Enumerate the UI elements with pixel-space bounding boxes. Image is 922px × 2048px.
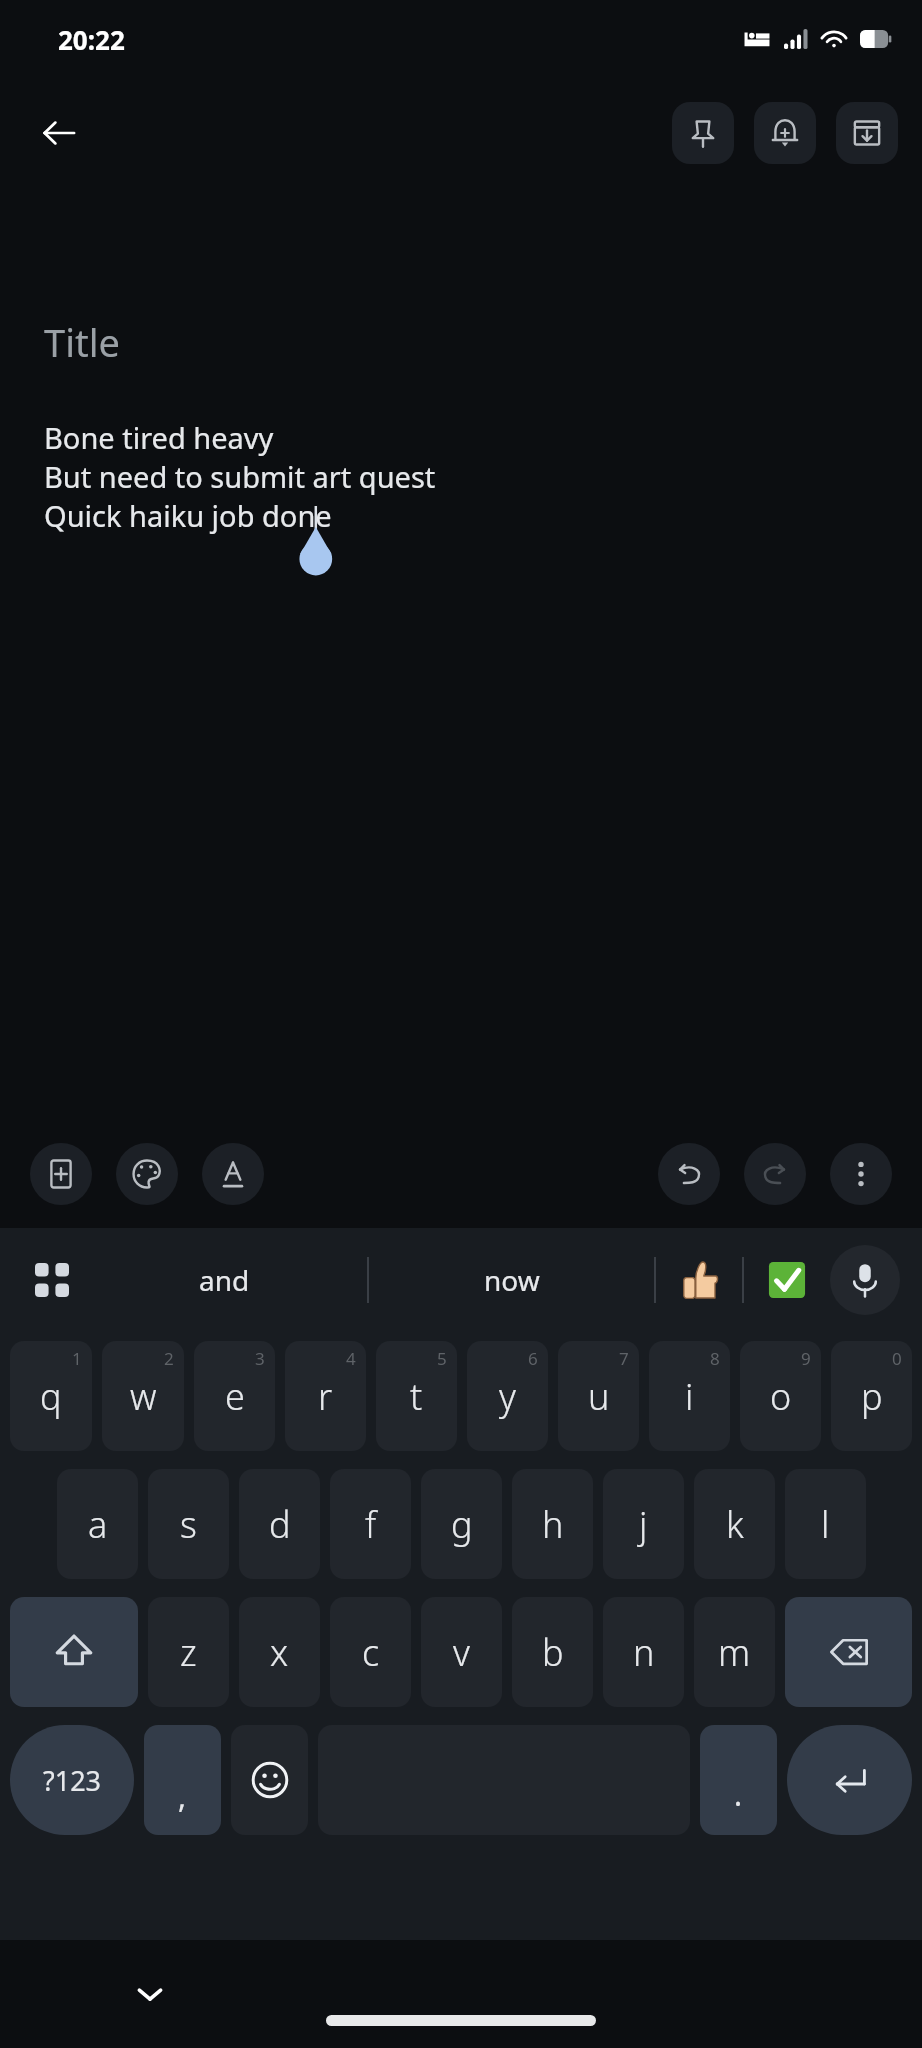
staticText: 3 xyxy=(255,1347,265,1370)
button[interactable]: l xyxy=(785,1469,866,1579)
button[interactable]: d xyxy=(239,1469,320,1579)
button[interactable]: Add xyxy=(30,1143,92,1205)
staticText: f xyxy=(365,1500,377,1549)
button[interactable]: u xyxy=(558,1341,639,1451)
button[interactable]: More options xyxy=(830,1143,892,1205)
staticText: But need to submit art quest xyxy=(44,457,436,496)
button[interactable]: Title xyxy=(44,316,878,368)
staticText: l xyxy=(821,1500,830,1549)
button[interactable]: t xyxy=(376,1341,457,1451)
button[interactable]: Archive xyxy=(836,102,898,164)
button[interactable]: , xyxy=(144,1725,221,1835)
staticText: g xyxy=(451,1500,473,1549)
button[interactable]: f xyxy=(330,1469,411,1579)
staticText: 0 xyxy=(892,1347,902,1370)
button[interactable]: . xyxy=(700,1725,777,1835)
button[interactable]: Backspace xyxy=(785,1597,912,1707)
staticText: d xyxy=(269,1500,291,1549)
staticText: 20:22 xyxy=(58,22,125,57)
button[interactable]: Enter xyxy=(787,1725,912,1835)
staticText: Quick haiku job done xyxy=(44,496,332,535)
staticText: r xyxy=(318,1372,333,1421)
button[interactable]: ?123 xyxy=(10,1725,134,1835)
staticText: t xyxy=(410,1372,423,1421)
staticText: h xyxy=(542,1500,564,1549)
button[interactable]: Hide keyboard xyxy=(122,1966,178,2022)
staticText: 8 xyxy=(710,1347,720,1370)
button[interactable]: m xyxy=(694,1597,775,1707)
button[interactable]: n xyxy=(603,1597,684,1707)
button[interactable]: q xyxy=(10,1341,92,1451)
button[interactable]: b xyxy=(512,1597,593,1707)
staticText: 7 xyxy=(619,1347,629,1370)
staticText: i xyxy=(685,1372,694,1421)
staticText: b xyxy=(542,1628,564,1677)
staticText: m xyxy=(718,1628,751,1677)
button[interactable]: i xyxy=(649,1341,730,1451)
staticText: k xyxy=(726,1500,744,1549)
staticText: 4 xyxy=(346,1347,356,1370)
staticText: x xyxy=(270,1628,289,1677)
button[interactable]: Toolbar xyxy=(22,1250,82,1310)
button[interactable]: x xyxy=(239,1597,320,1707)
button[interactable]: v xyxy=(421,1597,502,1707)
staticText: 9 xyxy=(801,1347,811,1370)
staticText: w xyxy=(130,1372,157,1421)
staticText: 6 xyxy=(528,1347,538,1370)
button[interactable]: Redo xyxy=(744,1143,806,1205)
button[interactable]: a xyxy=(57,1469,138,1579)
button[interactable] xyxy=(744,1228,830,1332)
staticText: j xyxy=(639,1500,648,1549)
button[interactable]: Formatting xyxy=(202,1143,264,1205)
staticText: 5 xyxy=(437,1347,447,1370)
staticText: v xyxy=(453,1628,470,1677)
button[interactable]: w xyxy=(102,1341,184,1451)
button[interactable]: h xyxy=(512,1469,593,1579)
staticText: 1 xyxy=(72,1347,82,1370)
button[interactable]: Back xyxy=(28,102,90,164)
button[interactable]: Voice input xyxy=(830,1245,900,1315)
button[interactable] xyxy=(656,1228,742,1332)
button[interactable]: k xyxy=(694,1469,775,1579)
staticText: q xyxy=(40,1372,62,1421)
button[interactable]: Undo xyxy=(658,1143,720,1205)
button[interactable]: p xyxy=(831,1341,912,1451)
staticText: Bone tired heavy xyxy=(44,418,274,457)
staticText: e xyxy=(225,1372,245,1421)
staticText: y xyxy=(499,1372,516,1421)
button[interactable]: Background options xyxy=(116,1143,178,1205)
staticText: ?123 xyxy=(43,1762,102,1799)
button[interactable]: e xyxy=(194,1341,275,1451)
button[interactable]: j xyxy=(603,1469,684,1579)
staticText: and xyxy=(199,1261,250,1299)
staticText: n xyxy=(633,1628,655,1677)
staticText: , xyxy=(178,1776,187,1817)
button[interactable]: s xyxy=(148,1469,229,1579)
button[interactable]: Emoji xyxy=(231,1725,308,1835)
button[interactable]: Pin note xyxy=(672,102,734,164)
staticText: o xyxy=(770,1372,792,1421)
button[interactable]: Shift xyxy=(10,1597,138,1707)
button[interactable]: r xyxy=(285,1341,366,1451)
button[interactable]: g xyxy=(421,1469,502,1579)
staticText: . xyxy=(734,1774,743,1815)
staticText: a xyxy=(88,1500,108,1549)
button[interactable]: and xyxy=(82,1228,367,1332)
button[interactable]: z xyxy=(148,1597,229,1707)
button[interactable]: o xyxy=(740,1341,821,1451)
button[interactable]: y xyxy=(467,1341,548,1451)
staticText: now xyxy=(484,1261,540,1299)
staticText: c xyxy=(362,1628,380,1677)
staticText: z xyxy=(180,1628,197,1677)
staticText: u xyxy=(588,1372,610,1421)
staticText: p xyxy=(861,1372,883,1421)
staticText: 2 xyxy=(164,1347,174,1370)
button[interactable]: c xyxy=(330,1597,411,1707)
button[interactable]: now xyxy=(369,1228,654,1332)
staticText: s xyxy=(180,1500,197,1549)
button[interactable]: Reminder xyxy=(754,102,816,164)
